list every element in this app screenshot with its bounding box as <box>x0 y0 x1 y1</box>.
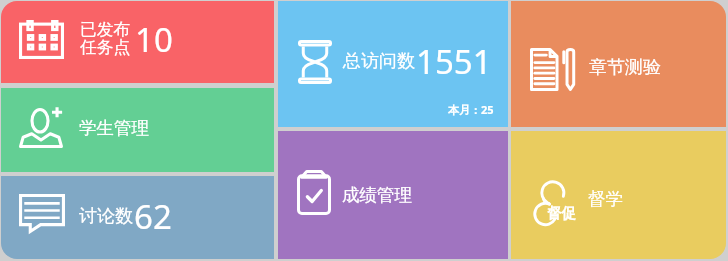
button[interactable]: 成绩管理 <box>278 131 508 259</box>
staticText: 已发布 任务点 <box>80 19 131 58</box>
button[interactable]: 已发布 任务点 <box>1 1 274 83</box>
staticText: 总访问数 <box>343 50 415 73</box>
button[interactable]: 督促 <box>511 131 726 259</box>
staticText: 章节测验 <box>589 56 661 79</box>
staticText: 本月：25 <box>448 102 494 117</box>
staticText: 成绩管理 <box>342 184 412 206</box>
staticText: 督学 <box>588 188 623 210</box>
button[interactable]: 讨论数 <box>1 176 274 259</box>
staticText: 62 <box>134 194 172 239</box>
staticText: 学生管理 <box>79 117 149 139</box>
staticText: 10 <box>135 17 173 62</box>
button[interactable]: 学生管理 <box>1 88 274 172</box>
button[interactable]: 章节测验 <box>511 1 726 127</box>
button[interactable]: 总访问数 <box>278 1 508 127</box>
staticText: 1551 <box>416 39 492 84</box>
staticText: 讨论数 <box>79 205 133 228</box>
staticText: 督促 <box>547 204 576 222</box>
